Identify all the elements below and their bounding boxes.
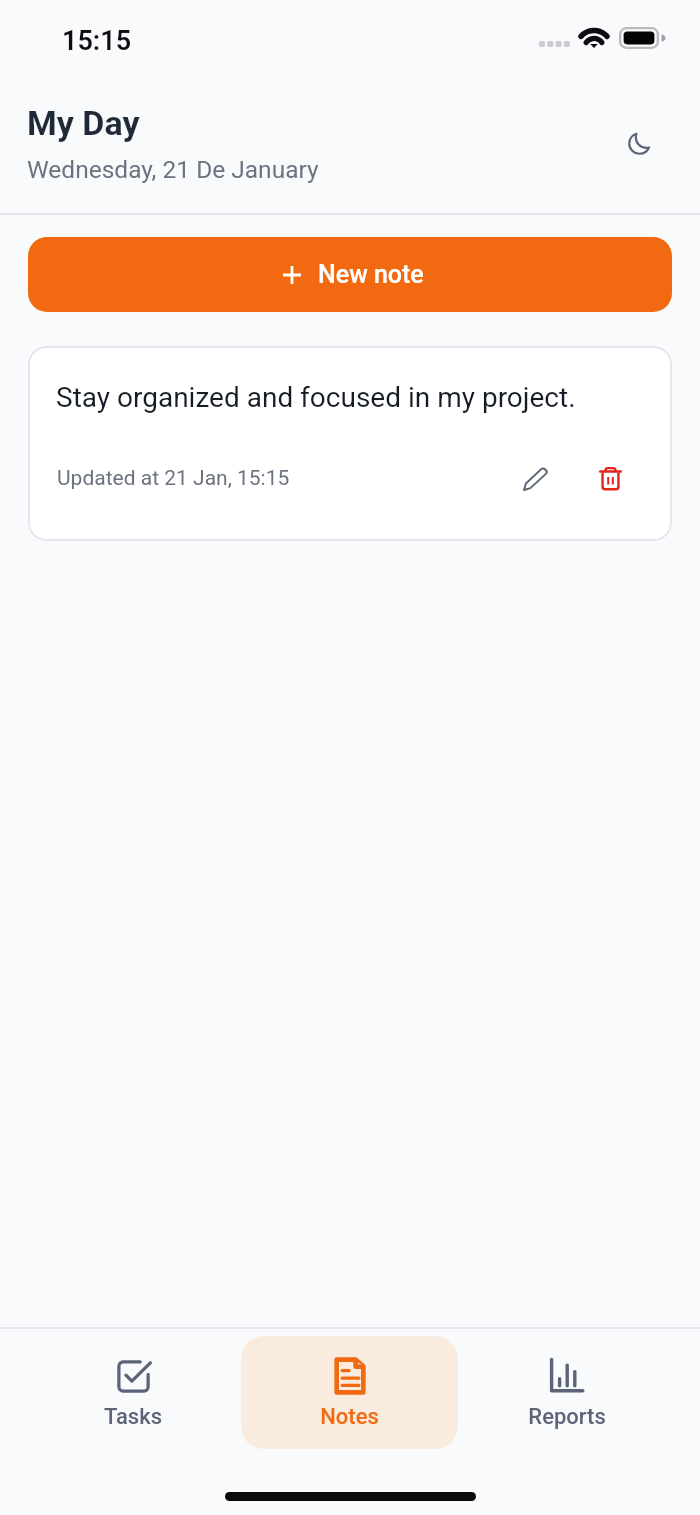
- button[interactable]: New note: [28, 237, 672, 312]
- button[interactable]: Notes: [241, 1336, 458, 1449]
- staticText: Reports: [528, 1404, 606, 1430]
- staticText: New note: [318, 260, 424, 289]
- staticText: Updated at 21 Jan, 15:15: [57, 466, 290, 491]
- button[interactable]: Toggle dark mode: [611, 115, 667, 171]
- staticText: 15:15: [62, 25, 132, 57]
- staticText: Stay organized and focused in my project…: [56, 381, 576, 414]
- staticText: Wednesday, 21 De January: [27, 155, 319, 184]
- button[interactable]: Stay organized and focused in my project…: [28, 346, 672, 541]
- button[interactable]: Edit note: [510, 452, 562, 504]
- button[interactable]: Reports: [458, 1336, 675, 1449]
- button[interactable]: Tasks: [25, 1336, 241, 1449]
- staticText: Notes: [320, 1404, 379, 1430]
- button[interactable]: Delete note: [584, 452, 636, 504]
- staticText: Tasks: [104, 1404, 162, 1430]
- staticText: My Day: [27, 103, 140, 143]
